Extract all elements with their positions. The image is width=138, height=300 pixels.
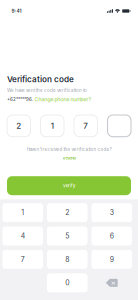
staticText: Verification code — [7, 74, 74, 84]
button[interactable]: 1 — [2, 203, 43, 222]
staticText: 7 — [21, 255, 25, 264]
staticText: 4 — [21, 232, 25, 240]
staticText: Haven't received the verification code? — [26, 147, 111, 152]
button[interactable]: Code digit — [107, 115, 131, 137]
button[interactable]: Change phone number? — [34, 96, 91, 102]
staticText: Change phone number? — [34, 96, 91, 102]
staticText: Resend — [62, 156, 75, 160]
staticText: +62*****96. — [7, 97, 33, 102]
button[interactable]: 8 — [47, 250, 87, 269]
staticText: 0 — [65, 279, 69, 287]
staticText: 9:41 — [11, 8, 21, 14]
staticText: 1 — [51, 121, 54, 131]
button[interactable]: 3 — [91, 203, 132, 222]
staticText: 9 — [110, 255, 114, 264]
button[interactable]: 4 — [2, 226, 43, 245]
button[interactable]: Delete — [91, 273, 132, 292]
staticText: 2 — [16, 121, 21, 131]
staticText: 3 — [110, 208, 114, 217]
button[interactable]: 0 — [47, 273, 87, 292]
staticText: 1 — [21, 208, 24, 217]
button[interactable]: 6 — [91, 226, 132, 245]
staticText: 5 — [65, 232, 69, 240]
staticText: We have sent the code verification to — [7, 88, 87, 93]
staticText: 6 — [110, 232, 114, 240]
staticText: 8 — [65, 255, 69, 264]
button[interactable]: Resend — [62, 156, 75, 160]
button[interactable]: 2 — [47, 203, 87, 222]
button[interactable]: 9 — [91, 250, 132, 269]
button[interactable]: Code digit — [7, 115, 30, 137]
staticText: 7 — [83, 121, 88, 131]
staticText: 2 — [65, 208, 69, 217]
button[interactable]: Verify — [7, 176, 131, 195]
button[interactable]: Code digit — [74, 115, 97, 137]
staticText: Verify — [63, 183, 75, 188]
button[interactable]: 5 — [47, 226, 87, 245]
button[interactable]: 7 — [2, 250, 43, 269]
button[interactable]: Code digit — [40, 115, 64, 137]
